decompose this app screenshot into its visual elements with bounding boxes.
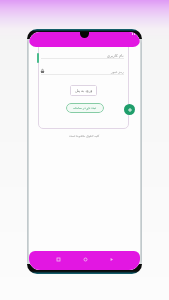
button[interactable]: ثبت نام در سامانه — [66, 103, 104, 113]
button[interactable]: ورود به پنل — [70, 85, 97, 96]
staticText: نام کاربری — [107, 53, 124, 58]
staticText: ثبت نام در سامانه — [73, 106, 97, 110]
button[interactable]: Recents — [54, 255, 62, 263]
button[interactable]: Home — [81, 255, 89, 263]
button[interactable]: Back — [107, 255, 115, 263]
button[interactable]: Add — [124, 104, 135, 115]
staticText: کلیه حقوق محفوظ است — [69, 134, 100, 138]
staticText: ورود به پنل — [75, 88, 93, 93]
staticText: رمز عبور — [111, 69, 124, 74]
